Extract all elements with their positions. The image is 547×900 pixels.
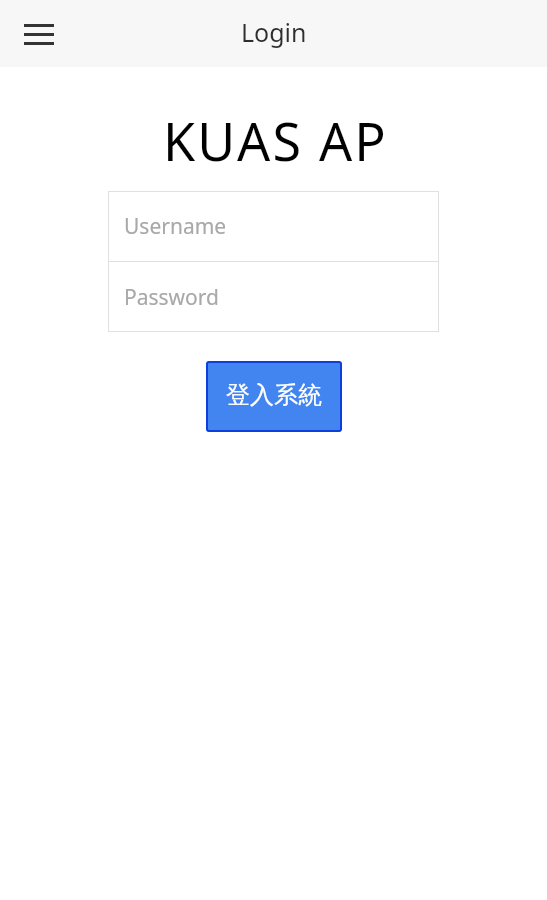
button[interactable]: Username xyxy=(108,191,439,261)
staticText: Login xyxy=(241,15,307,49)
staticText: Username xyxy=(124,212,227,241)
staticText: KUAS AP xyxy=(4,105,547,176)
staticText: Password xyxy=(124,283,219,312)
button[interactable]: Password xyxy=(108,262,439,332)
button[interactable]: Open navigation menu xyxy=(15,10,63,58)
button[interactable]: 登入系統 xyxy=(206,361,342,432)
staticText: 登入系統 xyxy=(226,380,322,410)
